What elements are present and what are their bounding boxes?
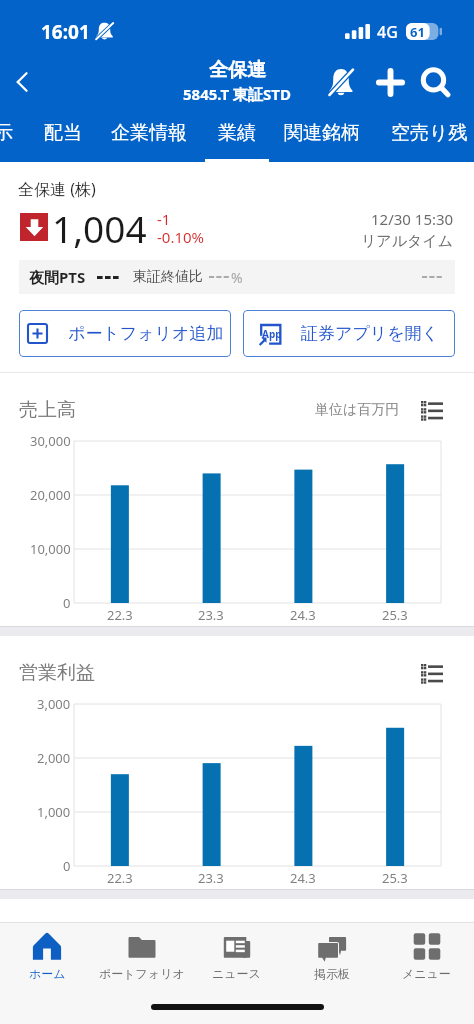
button[interactable]: 配当 xyxy=(31,109,95,162)
button[interactable]: 業績 xyxy=(205,109,269,162)
staticText: 全保連 (株) xyxy=(18,178,96,200)
button[interactable]: メニュー xyxy=(379,923,474,980)
staticText: 関連銘柄 xyxy=(284,121,360,145)
staticText: ポートフォリオ xyxy=(99,966,185,980)
staticText: 夜間PTS xyxy=(29,267,86,287)
staticText: 10,000 xyxy=(30,540,71,558)
staticText: 営業利益 xyxy=(19,661,95,685)
staticText: 証券アプリを開く xyxy=(301,323,439,344)
staticText: % xyxy=(231,268,243,287)
button[interactable]: App xyxy=(243,310,455,357)
staticText: 23.3 xyxy=(198,606,224,624)
staticText: リアルタイム xyxy=(361,232,454,251)
staticText: 1,000 xyxy=(37,803,71,821)
staticText: 22.3 xyxy=(107,869,133,887)
staticText: 1,004 xyxy=(52,203,147,253)
staticText: 12/30 15:30 xyxy=(371,209,454,229)
staticText: 20,000 xyxy=(30,486,71,504)
staticText: 示 xyxy=(0,121,13,145)
staticText: 23.3 xyxy=(198,869,224,887)
button[interactable]: 追加 xyxy=(367,55,413,109)
button[interactable]: 空売り残 xyxy=(377,109,474,162)
staticText: ニュース xyxy=(212,966,261,980)
button[interactable]: ホーム xyxy=(0,923,94,980)
staticText: -1 xyxy=(157,209,171,229)
staticText: 16:01 xyxy=(41,19,90,45)
button[interactable]: ポートフォリオ xyxy=(94,923,189,980)
button[interactable]: 表を表示 xyxy=(415,394,449,428)
staticText: 掲示板 xyxy=(314,966,350,980)
button[interactable]: 通知 xyxy=(318,55,364,109)
staticText: メニュー xyxy=(402,966,451,980)
button[interactable]: 企業情報 xyxy=(97,109,201,162)
staticText: App xyxy=(262,327,282,341)
button[interactable]: 夜間PTS xyxy=(19,260,455,294)
staticText: 0 xyxy=(63,857,71,875)
button[interactable]: 検索 xyxy=(412,55,458,109)
staticText: 単位は百万円 xyxy=(315,401,400,419)
staticText: 0 xyxy=(63,594,71,612)
button[interactable]: ニュース xyxy=(189,923,284,980)
button[interactable]: 示 xyxy=(0,109,19,162)
staticText: 25.3 xyxy=(382,869,408,887)
staticText: 配当 xyxy=(44,121,82,145)
staticText: 東証終値比 xyxy=(133,268,203,286)
staticText: 空売り残 xyxy=(391,121,468,145)
button[interactable]: 掲示板 xyxy=(284,923,379,980)
staticText: 25.3 xyxy=(382,606,408,624)
staticText: 22.3 xyxy=(107,606,133,624)
staticText: 61 xyxy=(410,23,425,40)
staticText: 24.3 xyxy=(290,869,316,887)
staticText: ホーム xyxy=(29,966,66,980)
staticText: ポートフォリオ追加 xyxy=(68,323,224,344)
staticText: 4G xyxy=(377,21,398,43)
staticText: 30,000 xyxy=(30,432,71,450)
staticText: 3,000 xyxy=(37,695,71,713)
staticText: 全保連 xyxy=(209,58,266,82)
staticText: 売上高 xyxy=(19,398,76,422)
button[interactable]: ポートフォリオ追加 xyxy=(19,310,231,357)
button[interactable]: 関連銘柄 xyxy=(270,109,374,162)
button[interactable]: 表を表示 xyxy=(415,657,449,691)
staticText: 5845.T 東証STD xyxy=(183,84,291,104)
button[interactable]: 戻る xyxy=(0,59,46,105)
staticText: 24.3 xyxy=(290,606,316,624)
staticText: -0.10% xyxy=(157,227,205,247)
staticText: 2,000 xyxy=(37,749,71,767)
staticText: 企業情報 xyxy=(111,121,187,145)
staticText: 業績 xyxy=(218,121,256,145)
